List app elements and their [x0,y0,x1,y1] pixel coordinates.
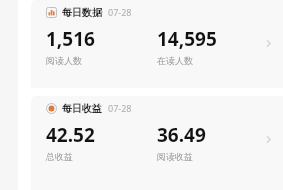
staticText: 07-28 [108,102,132,114]
staticText: 07-28 [108,6,132,18]
button[interactable]: 查看详情 [259,130,277,148]
staticText: 在读人数 [157,55,193,66]
staticText: 阅读收益 [157,151,193,162]
staticText: 总收益 [46,151,73,162]
button[interactable]: 每日数据 [31,0,283,88]
staticText: 每日数据 [62,6,102,19]
staticText: 14,595 [157,26,217,52]
staticText: 1,516 [46,26,95,52]
staticText: 42.52 [46,122,95,148]
button[interactable]: 每日收益 [31,96,283,190]
staticText: 每日收益 [62,102,102,115]
staticText: 36.49 [157,122,206,148]
staticText: 阅读人数 [46,55,82,66]
button[interactable]: 查看详情 [259,34,277,52]
